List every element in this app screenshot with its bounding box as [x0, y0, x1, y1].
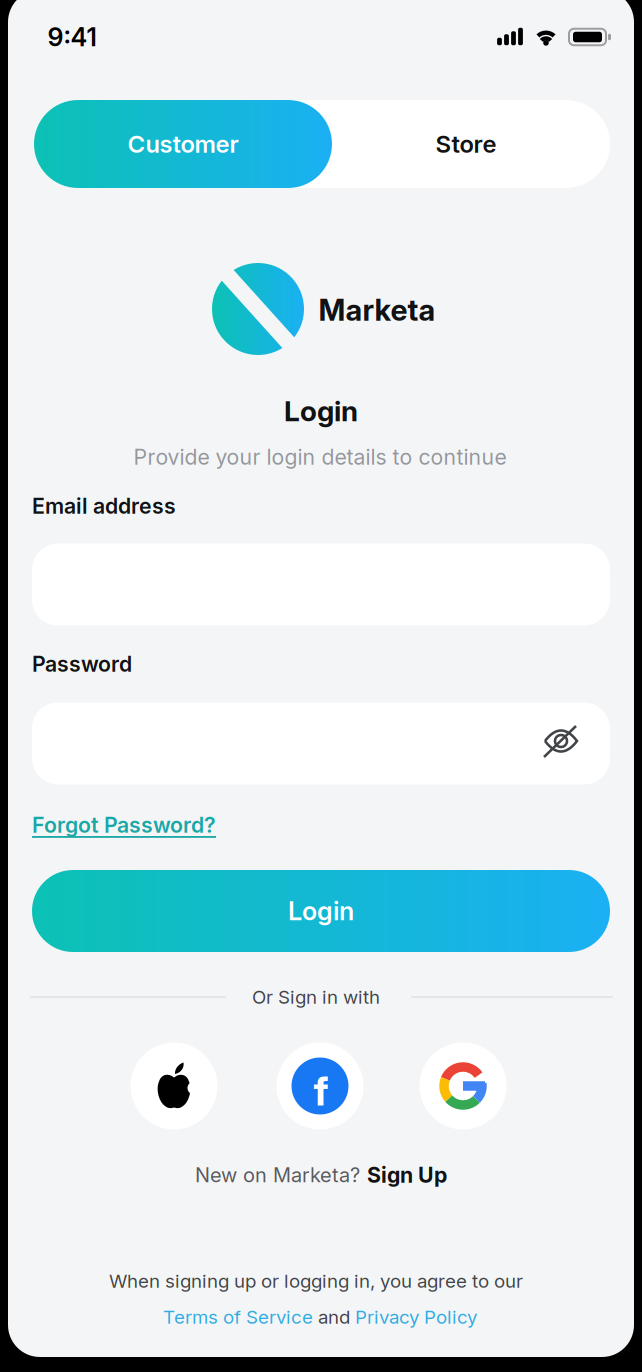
- button[interactable]: Sign in with Google: [419, 1042, 506, 1129]
- staticText: New on Marketa?: [195, 1163, 360, 1187]
- button[interactable]: Sign in with Apple: [130, 1042, 217, 1129]
- button[interactable]: Terms of Service: [163, 1306, 313, 1328]
- button[interactable]: Show password: [543, 725, 579, 759]
- staticText: and: [318, 1306, 350, 1328]
- button[interactable]: Login: [32, 870, 610, 952]
- button[interactable]: Customer: [34, 100, 332, 188]
- button[interactable]: Privacy Policy: [355, 1306, 477, 1328]
- staticText: Login: [284, 394, 358, 427]
- staticText: Or Sign in with: [252, 986, 380, 1008]
- staticText: Sign Up: [367, 1162, 447, 1188]
- staticText: 9:41: [47, 22, 96, 52]
- staticText: Store: [435, 130, 496, 158]
- staticText: Customer: [127, 130, 238, 158]
- button[interactable]: Sign Up: [367, 1162, 447, 1188]
- staticText: Password: [32, 651, 132, 677]
- staticText: Login: [288, 896, 354, 926]
- staticText: f: [313, 1067, 328, 1115]
- button[interactable]: Sign in with Facebook: [276, 1042, 363, 1129]
- button[interactable]: Forgot Password?: [32, 812, 216, 838]
- staticText: Terms of Service: [163, 1306, 313, 1328]
- staticText: Email address: [32, 493, 176, 519]
- staticText: Forgot Password?: [32, 812, 216, 838]
- staticText: Provide your login details to continue: [133, 444, 506, 470]
- button[interactable]: Store: [332, 100, 610, 188]
- staticText: Privacy Policy: [355, 1306, 477, 1328]
- staticText: When signing up or logging in, you agree…: [109, 1270, 523, 1292]
- staticText: Marketa: [318, 293, 435, 327]
